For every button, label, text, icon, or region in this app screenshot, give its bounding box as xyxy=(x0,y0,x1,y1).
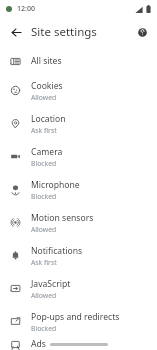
staticText: Allowed xyxy=(31,225,57,234)
button[interactable]: Pop-ups and redirects xyxy=(0,305,157,338)
button[interactable]: Motion sensors xyxy=(0,206,157,239)
staticText: All sites xyxy=(31,55,62,67)
button[interactable]: All sites xyxy=(0,48,157,74)
staticText: Notifications xyxy=(31,245,83,257)
staticText: Ask first xyxy=(31,126,57,135)
staticText: JavaScript xyxy=(31,278,71,290)
staticText: 12:00 xyxy=(17,4,35,14)
button[interactable]: Camera xyxy=(0,140,157,173)
button[interactable]: Cookies xyxy=(0,74,157,107)
staticText: Blocked xyxy=(31,192,57,201)
staticText: Blocked xyxy=(31,324,57,333)
staticText: Allowed xyxy=(31,93,57,102)
staticText: Motion sensors xyxy=(31,212,94,224)
staticText: Pop-ups and redirects xyxy=(31,311,120,323)
staticText: Blocked xyxy=(31,159,57,168)
button[interactable]: Ads xyxy=(0,338,157,350)
staticText: Ask first xyxy=(31,258,57,267)
button[interactable]: Help and feedback xyxy=(131,21,153,43)
staticText: Cookies xyxy=(31,80,63,92)
staticText: Microphone xyxy=(31,179,80,191)
staticText: Camera xyxy=(31,146,63,158)
staticText: Location xyxy=(31,113,66,125)
staticText: Site settings xyxy=(31,24,97,40)
button[interactable]: Location xyxy=(0,107,157,140)
button[interactable]: Notifications xyxy=(0,239,157,272)
button[interactable]: JavaScript xyxy=(0,272,157,305)
staticText: Allowed xyxy=(31,291,57,300)
staticText: Ads xyxy=(31,338,46,350)
button[interactable]: Microphone xyxy=(0,173,157,206)
button[interactable]: Navigate up xyxy=(5,21,27,43)
